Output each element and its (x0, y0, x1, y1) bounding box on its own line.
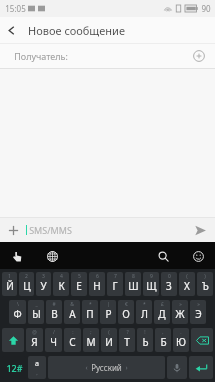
button[interactable]: _ (28, 300, 44, 324)
staticText: Й (6, 279, 14, 293)
button[interactable]: € (118, 300, 134, 324)
button[interactable]: # (46, 300, 62, 324)
staticText: SMS/MMS (29, 224, 72, 236)
button[interactable]: \ (9, 300, 26, 324)
button[interactable]: 5 (71, 272, 87, 296)
button[interactable]: 1 (2, 272, 17, 296)
staticText: Русский (91, 362, 122, 373)
staticText: \ (17, 301, 19, 308)
staticText: ( (186, 273, 188, 280)
staticText: 15:05 (5, 3, 26, 14)
staticText: Э (195, 307, 202, 321)
staticText: П (86, 307, 94, 321)
staticText: 4 (60, 273, 63, 280)
button[interactable]: Symbols (28, 356, 46, 379)
staticText: Ц (23, 279, 31, 293)
staticText: # (52, 301, 56, 308)
button[interactable]: 2 (19, 272, 34, 296)
staticText: » (197, 301, 200, 308)
staticText: € (125, 301, 128, 308)
staticText: * (89, 301, 92, 308)
staticText: 6 (96, 273, 99, 280)
staticText: Н (93, 279, 101, 293)
button[interactable]: Search (154, 247, 172, 265)
button[interactable]: 9 (143, 272, 159, 296)
button[interactable]: 7 (107, 272, 123, 296)
staticText: Ф (13, 307, 22, 321)
staticText: £ (161, 301, 164, 308)
staticText: ) (204, 273, 206, 280)
button[interactable]: Back (0, 19, 22, 41)
button[interactable]: 3 (36, 272, 51, 296)
button[interactable]: 8 (125, 272, 141, 296)
staticText: 9 (150, 273, 153, 280)
button[interactable]: ) (197, 272, 213, 296)
button[interactable]: . (173, 328, 189, 352)
button[interactable]: Backspace (191, 328, 213, 352)
button[interactable]: » (172, 300, 188, 324)
staticText: Ъ (202, 279, 209, 293)
staticText: @ (32, 329, 37, 336)
staticText: Т (124, 335, 130, 349)
staticText: Л (141, 307, 148, 321)
button[interactable]: & (64, 300, 80, 324)
button[interactable]: Emoji (189, 247, 207, 265)
staticText: И (105, 335, 113, 349)
staticText: * (143, 301, 146, 308)
button[interactable]: Voice input (167, 356, 187, 379)
button[interactable]: : (64, 328, 81, 352)
button[interactable]: Language (43, 247, 61, 265)
staticText: 5 (78, 273, 81, 280)
staticText: , (36, 369, 38, 377)
button[interactable]: £ (154, 300, 170, 324)
staticText: Щ (146, 279, 157, 293)
button[interactable]: * (82, 300, 98, 324)
button[interactable]: » (190, 300, 206, 324)
staticText: _ (35, 301, 38, 308)
button[interactable]: ( (179, 272, 195, 296)
staticText: О (122, 307, 130, 321)
staticText: / (53, 329, 55, 336)
staticText: : (72, 329, 74, 336)
staticText: ! (144, 329, 146, 336)
staticText: , (162, 329, 164, 336)
button[interactable]: Space (48, 356, 165, 379)
button[interactable]: Handwriting (8, 247, 26, 265)
staticText: В (51, 307, 58, 321)
staticText: Б (160, 335, 167, 349)
staticText: Е (76, 279, 82, 293)
button[interactable]: ( (101, 328, 117, 352)
button[interactable]: 12# (2, 356, 26, 379)
button[interactable]: 4 (53, 272, 69, 296)
button[interactable]: Attach (3, 220, 23, 240)
staticText: Я (31, 335, 38, 349)
button[interactable]: 0 (161, 272, 177, 296)
button[interactable]: @ (26, 328, 43, 352)
button[interactable]: * (136, 300, 152, 324)
button[interactable]: Shift (2, 328, 24, 352)
button[interactable]: ; (83, 328, 99, 352)
staticText: Ж (175, 307, 185, 321)
button[interactable]: ! (137, 328, 153, 352)
staticText: 12# (6, 362, 23, 374)
button[interactable]: ? (119, 328, 135, 352)
staticText: ( (108, 329, 110, 336)
staticText: Ю (176, 335, 186, 349)
staticText: У (40, 279, 47, 293)
button[interactable]: Send (190, 220, 210, 240)
staticText: › (125, 363, 128, 373)
staticText: Ш (128, 279, 139, 293)
staticText: 1 (8, 273, 11, 280)
button[interactable]: Enter (189, 356, 213, 379)
staticText: Р (105, 307, 112, 321)
staticText: . (180, 329, 182, 336)
button[interactable]: , (155, 328, 171, 352)
button[interactable]: Add contact (189, 46, 209, 66)
button[interactable]: / (45, 328, 62, 352)
staticText: Ь (142, 335, 149, 349)
button[interactable]: | (100, 300, 116, 324)
staticText: Ы (32, 307, 41, 321)
button[interactable]: 6 (89, 272, 105, 296)
staticText: С (69, 335, 76, 349)
staticText: Ч (50, 335, 57, 349)
